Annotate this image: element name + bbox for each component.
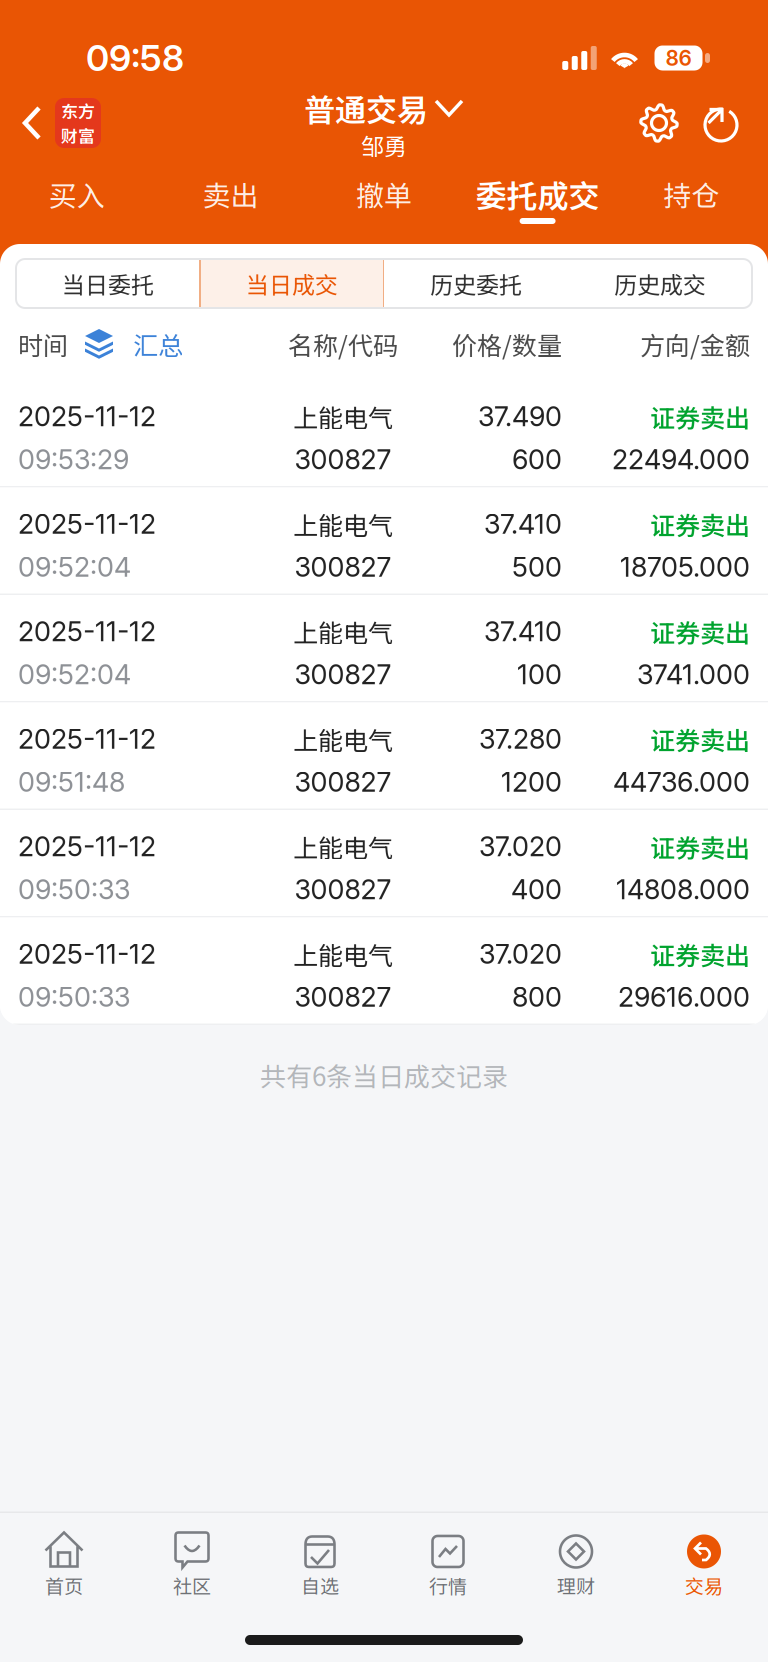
staticText: 上能电气 [293,506,393,542]
staticText: 历史委托 [430,267,522,300]
staticText: 300827 [294,551,391,583]
staticText: 300827 [294,443,391,476]
button[interactable]: 自选 [256,1513,384,1607]
staticText: 600 [512,443,562,476]
button[interactable]: 2025-11-12 [0,380,768,486]
button[interactable]: 历史成交 [568,259,752,308]
staticText: 上能电气 [293,936,393,972]
staticText: 名称/代码 [288,326,398,362]
staticText: 社区 [173,1571,211,1599]
staticText: 2025-11-12 [18,615,156,648]
staticText: 300827 [294,981,391,1013]
button[interactable]: 当日成交 [200,259,384,308]
staticText: 09:58 [86,36,184,80]
staticText: 卖出 [202,174,258,214]
staticText: 证券卖出 [650,721,750,757]
staticText: 2025-11-12 [18,400,156,433]
button[interactable]: 撤单 [307,162,461,232]
staticText: 证券卖出 [650,613,750,650]
staticText: 37.410 [484,508,562,540]
button[interactable]: 交易 [640,1513,768,1607]
staticText: 证券卖出 [650,936,750,972]
staticText: 买入 [49,174,105,214]
button[interactable]: 当日委托 [16,259,200,308]
button[interactable]: 持仓 [614,162,768,232]
staticText: 委托成交 [476,172,600,216]
staticText: 09:52:04 [18,551,131,583]
button[interactable]: 理财 [512,1513,640,1607]
staticText: 交易 [685,1571,723,1599]
staticText: 东方 [61,98,95,123]
button[interactable]: 买入 [0,162,154,232]
staticText: 09:50:33 [18,981,130,1013]
button[interactable]: 设置 [638,102,680,144]
button[interactable]: 委托成交 [461,162,614,232]
staticText: 44736.000 [613,766,750,798]
staticText: 当日成交 [246,267,338,300]
staticText: 37.410 [484,615,562,648]
staticText: 当日委托 [62,267,154,300]
button[interactable]: 卖出 [154,162,307,232]
staticText: 邹勇 [361,128,407,162]
staticText: 首页 [45,1571,83,1599]
staticText: 价格/数量 [452,326,562,362]
staticText: 37.020 [479,938,562,970]
staticText: 14808.000 [616,873,750,906]
staticText: 300827 [294,766,391,798]
staticText: 时间 [18,326,68,362]
staticText: 共有6条当日成交记录 [260,1056,508,1094]
staticText: 方向/金额 [640,326,750,362]
staticText: 行情 [429,1571,467,1599]
button[interactable]: 2025-11-12 [0,702,768,808]
staticText: 300827 [294,658,391,691]
staticText: 持仓 [663,174,719,214]
staticText: 证券卖出 [650,506,750,542]
staticText: 3741.000 [637,658,750,691]
button[interactable]: 2025-11-12 [0,487,768,593]
staticText: 18705.000 [620,551,750,583]
staticText: 22494.000 [612,443,750,476]
staticText: 37.280 [479,723,562,755]
button[interactable]: 2025-11-12 [0,595,768,701]
staticText: 财富 [61,123,95,148]
staticText: 500 [512,551,562,583]
staticText: 400 [511,873,562,906]
staticText: 2025-11-12 [18,938,156,970]
staticText: 1200 [501,766,562,798]
button[interactable]: 东方 [0,84,101,162]
staticText: 证券卖出 [650,398,750,435]
button[interactable]: 2025-11-12 [0,810,768,916]
staticText: 上能电气 [293,398,393,435]
staticText: 汇总 [133,326,183,362]
staticText: 09:52:04 [18,658,131,691]
button[interactable]: 社区 [128,1513,256,1607]
staticText: 100 [517,658,562,691]
staticText: 普通交易 [304,86,428,130]
button[interactable]: 普通交易 [234,84,534,162]
button[interactable]: 历史委托 [384,259,568,308]
staticText: 上能电气 [293,613,393,650]
staticText: 上能电气 [293,721,393,757]
staticText: 09:50:33 [18,873,130,906]
button[interactable]: 行情 [384,1513,512,1607]
staticText: 撤单 [356,174,412,214]
staticText: 历史成交 [614,267,706,300]
staticText: 2025-11-12 [18,508,156,540]
button[interactable]: 刷新 [700,101,742,145]
staticText: 2025-11-12 [18,723,156,755]
staticText: 800 [512,981,562,1013]
staticText: 自选 [301,1571,339,1599]
staticText: 29616.000 [618,981,750,1013]
staticText: 证券卖出 [650,828,750,865]
button[interactable]: 2025-11-12 [0,917,768,1023]
staticText: 上能电气 [293,828,393,865]
staticText: 09:51:48 [18,766,125,798]
staticText: 86 [665,45,691,71]
staticText: 理财 [557,1571,595,1599]
button[interactable]: 首页 [0,1513,128,1607]
staticText: 37.020 [479,830,562,863]
staticText: 09:53:29 [18,443,129,476]
staticText: 37.490 [478,400,562,433]
staticText: 300827 [294,873,391,906]
staticText: 2025-11-12 [18,830,156,863]
